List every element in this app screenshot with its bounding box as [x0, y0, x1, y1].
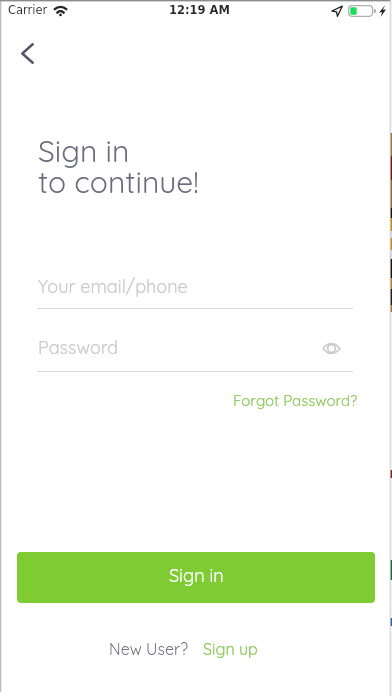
staticText: Forgot Password? [233, 391, 358, 410]
button[interactable]: Sign up [203, 639, 258, 659]
button[interactable]: Sign in [17, 552, 375, 603]
button[interactable]: Your email/phone [38, 275, 353, 309]
staticText: Sign in to continue! [38, 132, 199, 200]
staticText: Sign up [203, 639, 258, 659]
staticText: Carrier [8, 3, 48, 16]
button[interactable]: Back [5, 31, 49, 75]
staticText: Password [38, 336, 119, 359]
staticText: New User? [109, 639, 188, 659]
staticText: Your email/phone [38, 275, 188, 298]
button[interactable]: Password [38, 336, 353, 372]
button[interactable]: Show password [318, 335, 344, 361]
staticText: Sign in [169, 564, 224, 587]
button[interactable]: Forgot Password? [229, 387, 362, 414]
staticText: 12:19 AM [169, 3, 230, 16]
